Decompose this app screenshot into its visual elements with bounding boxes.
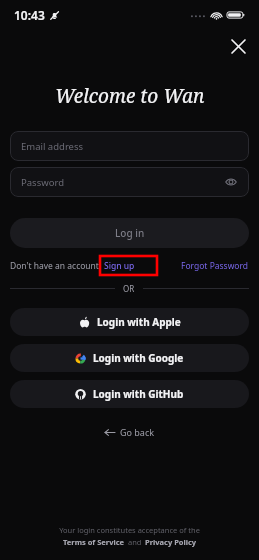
staticText: Privacy Policy <box>145 537 197 547</box>
staticText: Log in <box>115 226 145 240</box>
staticText: Login with Apple <box>97 315 181 329</box>
staticText: Terms of Service <box>63 537 125 547</box>
button[interactable]: Login with Apple <box>10 308 249 336</box>
staticText: Welcome to Wan <box>55 83 205 109</box>
button[interactable]: Terms of Service <box>63 537 125 547</box>
staticText: Don't have an account <box>10 260 99 272</box>
staticText: OR <box>123 283 135 294</box>
button[interactable]: Go back <box>94 422 165 442</box>
button[interactable]: Sign up <box>101 258 138 274</box>
staticText: Login with GitHub <box>93 387 184 401</box>
button[interactable]: Password <box>10 167 249 197</box>
staticText: and <box>128 537 142 547</box>
staticText: Sign up <box>104 260 135 272</box>
button[interactable]: Email address <box>10 131 249 161</box>
staticText: 10:43 <box>14 7 45 23</box>
button[interactable]: Forgot Password <box>181 260 249 272</box>
button[interactable]: Login with Google <box>10 344 249 372</box>
staticText: Your login constitutes acceptance of the <box>59 525 200 535</box>
staticText: Forgot Password <box>181 260 249 272</box>
button[interactable]: Privacy Policy <box>145 537 197 547</box>
button[interactable]: Close <box>227 30 249 62</box>
button[interactable]: Login with GitHub <box>10 380 249 408</box>
staticText: Password <box>21 176 64 189</box>
staticText: Go back <box>120 426 155 438</box>
button[interactable]: Show password <box>224 175 238 189</box>
staticText: Email address <box>21 140 84 153</box>
button[interactable]: Log in <box>10 218 249 248</box>
staticText: Login with Google <box>93 351 184 365</box>
